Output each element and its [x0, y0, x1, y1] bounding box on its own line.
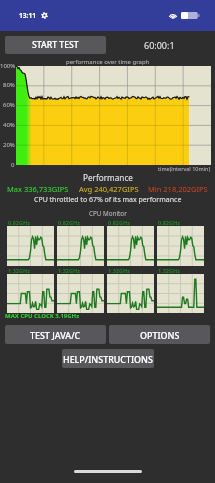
button[interactable]: START TEST [5, 36, 106, 54]
staticText: 40% [3, 121, 15, 129]
staticText: HELP/INSTRUCTIONS [63, 353, 153, 365]
staticText: CPU throttled to 67% of its max performa… [34, 195, 182, 205]
staticText: 60% [3, 101, 15, 109]
staticText: 1.32GHz [108, 267, 130, 274]
staticText: 1.32GHz [158, 267, 180, 274]
staticText: MAX CPU CLOCK 3.19GHz [5, 312, 80, 320]
button[interactable]: TEST JAVA/C [5, 325, 106, 344]
staticText: CPU Monitor [89, 209, 127, 218]
staticText: 1.32GHz [8, 267, 30, 274]
staticText: 0 [11, 161, 15, 169]
staticText: Avg 240,427GIPS [79, 184, 139, 194]
staticText: Performance [83, 172, 133, 183]
staticText: OPTIONS [140, 329, 180, 341]
button[interactable]: OPTIONS [109, 325, 210, 344]
staticText: TEST JAVA/C [30, 329, 81, 341]
staticText: 13:11 [19, 11, 36, 20]
staticText: 60:00:1 [144, 39, 175, 51]
staticText: 0.82GHz [108, 219, 130, 226]
staticText: 80% [3, 81, 15, 89]
staticText: 1.32GHz [58, 267, 80, 274]
staticText: 0.82GHz [8, 219, 30, 226]
staticText: 0.82GHz [58, 219, 80, 226]
staticText: 0.82GHz [158, 219, 180, 226]
button[interactable]: HELP/INSTRUCTIONS [62, 349, 154, 368]
staticText: time(interval 10min) [158, 165, 211, 172]
staticText: 100% [0, 62, 15, 70]
staticText: 20% [3, 141, 15, 149]
staticText: START TEST [32, 39, 79, 51]
staticText: Min 218,202GIPS [148, 184, 208, 194]
staticText: performance over time graph [66, 58, 150, 66]
staticText: Max 336,733GIPS [7, 184, 69, 194]
